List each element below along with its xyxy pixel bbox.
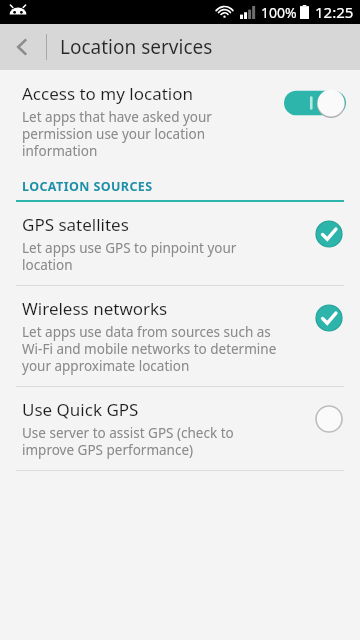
button[interactable]: GPS satellites <box>0 202 360 285</box>
staticText: GPS satellites <box>22 213 129 236</box>
button[interactable]: Back <box>0 24 46 70</box>
staticText: Use Quick GPS <box>22 398 139 421</box>
staticText: Use server to assist GPS (check to impro… <box>22 424 247 459</box>
other: Unchecked <box>314 404 344 434</box>
button[interactable]: Access to my location <box>0 76 360 168</box>
button[interactable]: Wireless networks <box>0 286 360 386</box>
other: Checked <box>314 219 344 249</box>
staticText: Location services <box>60 34 213 60</box>
staticText: Wireless networks <box>22 297 168 320</box>
staticText: Let apps use data from sources such as W… <box>22 323 284 375</box>
staticText: 100% <box>261 3 297 22</box>
staticText: 12:25 <box>315 2 354 22</box>
staticText: Let apps use GPS to pinpoint your locati… <box>22 239 244 274</box>
button[interactable]: Use Quick GPS <box>0 387 360 470</box>
staticText: Let apps that have asked your permission… <box>22 108 237 160</box>
other: Checked <box>314 303 344 333</box>
staticText: LOCATION SOURCES <box>22 178 153 195</box>
button[interactable]: Access to my location toggle <box>284 88 346 118</box>
staticText: Access to my location <box>22 82 193 105</box>
